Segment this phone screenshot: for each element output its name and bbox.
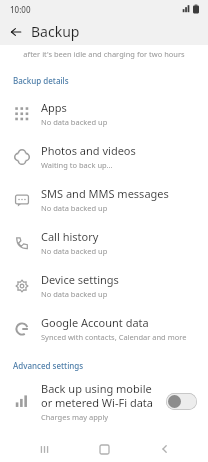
button[interactable]: Back up using mobile data toggle: [166, 393, 197, 410]
staticText: 10:00: [10, 4, 31, 15]
button[interactable]: Home: [87, 436, 121, 462]
staticText: SMS and MMS messages: [41, 186, 169, 201]
staticText: Backup: [31, 22, 80, 41]
staticText: Back up using mobile or metered Wi-Fi da…: [41, 381, 160, 410]
staticText: Waiting to back up…: [41, 160, 113, 170]
staticText: Device settings: [41, 272, 119, 287]
staticText: Photos and videos: [41, 143, 136, 158]
button[interactable]: SMS and MMS messages: [0, 178, 208, 221]
button[interactable]: Back up using mobile or metered Wi-Fi da…: [0, 375, 208, 427]
staticText: No data backed up: [41, 203, 108, 213]
button[interactable]: Call history: [0, 221, 208, 264]
staticText: Backup details: [13, 75, 69, 86]
staticText: Apps: [41, 100, 67, 115]
staticText: No data backed up: [41, 289, 108, 299]
button[interactable]: Back: [5, 21, 27, 43]
staticText: Charges may apply: [41, 412, 109, 422]
staticText: No data backed up: [41, 117, 108, 127]
staticText: after it's been idle and charging for tw…: [14, 49, 194, 59]
button[interactable]: Back: [148, 436, 182, 462]
staticText: No data backed up: [41, 246, 108, 256]
staticText: Google Account data: [41, 315, 149, 330]
staticText: Advanced settings: [13, 360, 84, 371]
button[interactable]: Recents: [27, 436, 61, 462]
button[interactable]: Device settings: [0, 264, 208, 307]
staticText: Synced with contacts, Calendar and more: [41, 332, 187, 342]
button[interactable]: Photos and videos: [0, 135, 208, 178]
button[interactable]: Apps: [0, 92, 208, 135]
button[interactable]: Google Account data: [0, 307, 208, 350]
staticText: Call history: [41, 229, 99, 244]
